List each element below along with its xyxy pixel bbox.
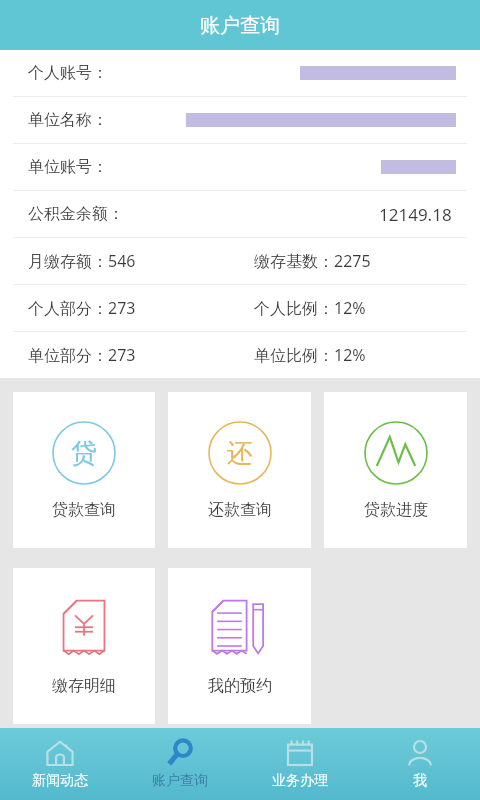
staticText: 我的预约 <box>208 676 272 696</box>
button[interactable]: 缴存明细 <box>13 568 155 724</box>
button[interactable]: 账户查询 <box>120 728 240 800</box>
button[interactable]: 业务办理 <box>240 728 360 800</box>
staticText: 12149.18 <box>379 203 452 226</box>
staticText: 账户查询 <box>152 772 208 790</box>
button[interactable]: 我 <box>360 728 480 800</box>
button[interactable]: 还 <box>168 392 311 548</box>
button[interactable]: 新闻动态 <box>0 728 120 800</box>
button[interactable]: 我的预约 <box>168 568 311 724</box>
button[interactable]: 单位部分：273 <box>0 332 480 378</box>
staticText: 缴存基数：2275 <box>254 250 371 272</box>
button[interactable]: 个人部分：273 <box>0 285 480 331</box>
button[interactable]: 公积金余额： <box>0 191 480 237</box>
staticText: 单位账号： <box>28 157 108 177</box>
staticText: 公积金余额： <box>28 204 124 224</box>
button[interactable]: 贷款进度 <box>324 392 467 548</box>
staticText: 新闻动态 <box>32 772 88 790</box>
staticText: 个人比例：12% <box>254 297 366 319</box>
button[interactable]: 单位名称： <box>0 97 480 143</box>
staticText: 缴存明细 <box>52 676 116 696</box>
button[interactable]: 贷 <box>13 392 155 548</box>
staticText: 个人部分：273 <box>28 297 136 319</box>
staticText: 单位比例：12% <box>254 344 366 366</box>
staticText: 业务办理 <box>272 772 328 790</box>
button[interactable]: 个人账号： <box>0 50 480 96</box>
button[interactable]: 月缴存额：546 <box>0 238 480 284</box>
staticText: 还 <box>227 437 253 470</box>
staticText: 单位名称： <box>28 110 108 130</box>
staticText: 账户查询 <box>200 13 280 38</box>
staticText: 贷 <box>71 437 97 470</box>
staticText: 月缴存额：546 <box>28 250 136 272</box>
staticText: 贷款查询 <box>52 500 116 520</box>
button[interactable]: 单位账号： <box>0 144 480 190</box>
staticText: 还款查询 <box>208 500 272 520</box>
staticText: 我 <box>413 772 427 790</box>
staticText: 单位部分：273 <box>28 344 136 366</box>
staticText: 贷款进度 <box>364 500 428 520</box>
staticText: 个人账号： <box>28 63 108 83</box>
